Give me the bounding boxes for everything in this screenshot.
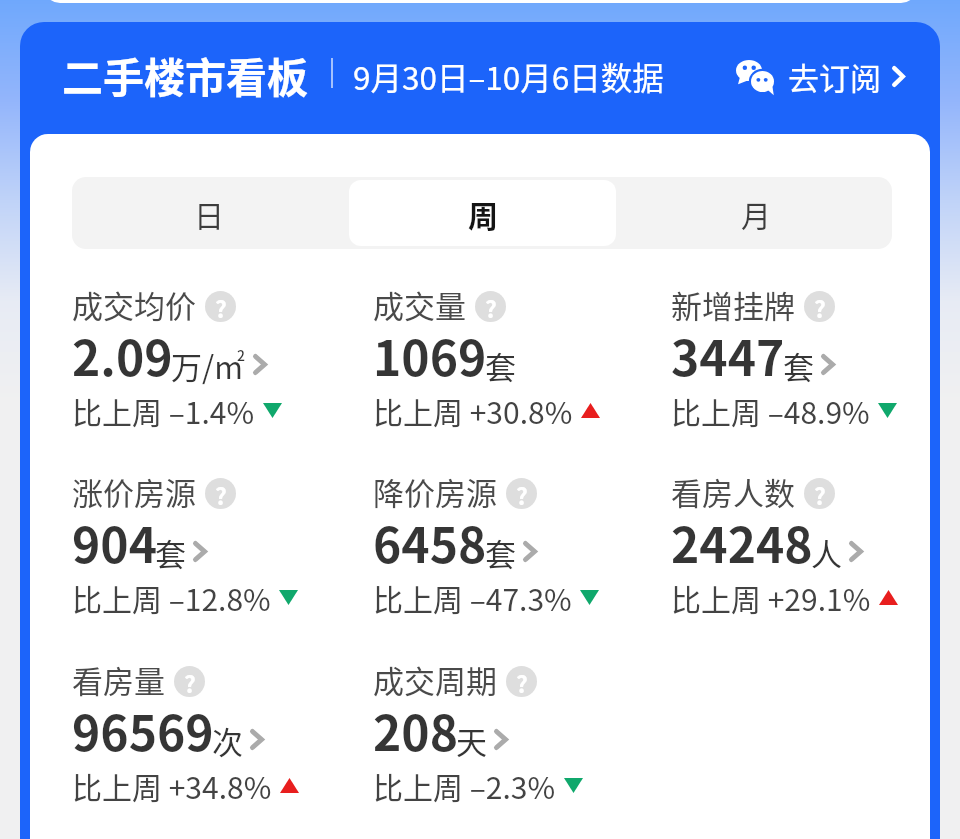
staticText: 比上周 –47.3% [373, 576, 572, 619]
staticText: 涨价房源 [72, 469, 196, 514]
staticText: 看房量 [72, 657, 165, 702]
staticText: 日 [194, 192, 224, 235]
other: WeChat subscribe [736, 60, 774, 92]
button[interactable] [373, 471, 643, 616]
staticText: 看房人数 [671, 469, 795, 514]
staticText: ? [516, 478, 528, 509]
staticText: ? [814, 291, 826, 322]
staticText: 904 [72, 507, 157, 577]
staticText: 比上周 –1.4% [72, 389, 255, 432]
staticText: 24248 [671, 507, 813, 577]
staticText: ? [485, 291, 497, 322]
button[interactable]: 月 [622, 180, 889, 246]
staticText: 套 [485, 343, 516, 388]
staticText: 天 [456, 718, 487, 763]
staticText: 人 [811, 530, 842, 575]
staticText: 2.09 [72, 320, 173, 390]
button[interactable]: WeChat subscribe [728, 50, 913, 102]
staticText: 套 [485, 530, 516, 575]
staticText: 周 [468, 192, 498, 235]
staticText: ? [516, 666, 528, 697]
staticText: 套 [155, 530, 186, 575]
staticText: 96569 [72, 695, 214, 765]
staticText: 次 [212, 718, 243, 763]
staticText: 3447 [671, 320, 785, 390]
button[interactable] [671, 284, 941, 429]
staticText: 万/m [171, 343, 243, 388]
button[interactable] [373, 284, 643, 429]
staticText: 比上周 +29.1% [671, 576, 871, 619]
staticText: 1069 [373, 320, 487, 390]
staticText: 比上周 +34.8% [72, 764, 272, 807]
staticText: 比上周 –12.8% [72, 576, 271, 619]
button[interactable] [72, 284, 342, 429]
button[interactable]: 日 [75, 180, 343, 246]
staticText: 降价房源 [373, 469, 497, 514]
staticText: 比上周 +30.8% [373, 389, 573, 432]
staticText: 新增挂牌 [671, 282, 795, 327]
staticText: 套 [783, 343, 814, 388]
button[interactable] [373, 659, 643, 804]
staticText: 二手楼市看板 [62, 45, 308, 104]
staticText: 成交周期 [373, 657, 497, 702]
staticText: 6458 [373, 507, 487, 577]
staticText: ? [215, 291, 227, 322]
staticText: ? [184, 666, 196, 697]
button[interactable] [72, 471, 342, 616]
button[interactable] [72, 659, 342, 804]
staticText: 成交均价 [72, 282, 196, 327]
staticText: 2 [237, 345, 245, 365]
staticText: ? [814, 478, 826, 509]
staticText: 208 [373, 695, 458, 765]
staticText: 比上周 –2.3% [373, 764, 556, 807]
staticText: ? [215, 478, 227, 509]
staticText: 月 [741, 192, 771, 235]
staticText: 成交量 [373, 282, 466, 327]
button[interactable]: 周 [349, 180, 616, 246]
staticText: 去订阅 [788, 54, 881, 99]
staticText: 9月30日–10月6日数据 [353, 53, 664, 99]
staticText: 比上周 –48.9% [671, 389, 870, 432]
button[interactable] [671, 471, 941, 616]
